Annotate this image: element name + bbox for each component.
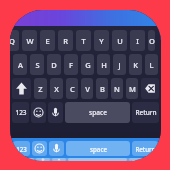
- button[interactable]: 123: [12, 102, 29, 123]
- staticText: I: [136, 36, 139, 46]
- staticText: L: [149, 60, 154, 70]
- button[interactable]: Z: [34, 78, 47, 99]
- button[interactable]: W: [22, 30, 37, 51]
- staticText: 123: [21, 158, 31, 161]
- button[interactable]: M: [126, 78, 138, 99]
- button[interactable]: L: [145, 54, 158, 75]
- button[interactable]: F: [64, 54, 78, 75]
- button[interactable]: 123: [13, 141, 30, 156]
- button[interactable]: U: [112, 30, 127, 51]
- button[interactable]: Return: [132, 102, 159, 123]
- button[interactable]: Q: [10, 10, 161, 161]
- button[interactable]: T: [76, 30, 91, 51]
- button[interactable]: E: [40, 30, 55, 51]
- button[interactable]: O: [148, 30, 155, 51]
- button[interactable]: H: [97, 54, 110, 75]
- staticText: Return: [132, 158, 151, 161]
- button[interactable]: space: [66, 141, 130, 156]
- button[interactable]: space: [65, 102, 130, 123]
- button[interactable]: Emoji keyboard: [32, 141, 47, 156]
- staticText: M: [129, 84, 136, 94]
- button[interactable]: I: [130, 30, 145, 51]
- staticText: D: [51, 60, 57, 70]
- button[interactable]: G: [81, 54, 94, 75]
- button[interactable]: Q: [10, 30, 19, 51]
- staticText: H: [101, 60, 107, 70]
- staticText: G: [85, 60, 91, 70]
- staticText: X: [54, 84, 59, 94]
- staticText: S: [35, 60, 40, 70]
- button[interactable]: space: [68, 158, 127, 161]
- staticText: R: [63, 36, 68, 46]
- staticText: W: [26, 36, 34, 46]
- staticText: B: [100, 84, 105, 94]
- staticText: 123: [16, 145, 27, 153]
- staticText: Return: [135, 108, 157, 117]
- staticText: K: [133, 60, 138, 70]
- staticText: J: [118, 60, 121, 70]
- button[interactable]: D: [47, 54, 61, 75]
- button[interactable]: B: [96, 78, 108, 99]
- button[interactable]: Voice input: [49, 141, 64, 156]
- staticText: Q: [10, 36, 15, 46]
- button[interactable]: Emoji keyboard: [36, 158, 50, 161]
- button[interactable]: V: [81, 78, 93, 99]
- button[interactable]: Return: [129, 158, 153, 161]
- staticText: Z: [38, 84, 43, 94]
- staticText: F: [69, 60, 73, 70]
- staticText: C: [70, 84, 75, 94]
- button[interactable]: Backspace: [141, 78, 159, 99]
- button[interactable]: A: [13, 54, 27, 75]
- staticText: O: [149, 36, 155, 46]
- staticText: V: [85, 84, 90, 94]
- staticText: N: [114, 84, 120, 94]
- staticText: Return: [135, 145, 156, 153]
- button[interactable]: 123: [18, 158, 34, 161]
- button[interactable]: R: [58, 30, 73, 51]
- button[interactable]: C: [66, 78, 78, 99]
- button[interactable]: J: [113, 54, 126, 75]
- button[interactable]: X: [50, 78, 63, 99]
- button[interactable]: K: [129, 54, 142, 75]
- button[interactable]: Voice input: [52, 158, 66, 161]
- staticText: 123: [15, 108, 27, 117]
- staticText: space: [89, 108, 107, 117]
- staticText: U: [117, 36, 123, 46]
- staticText: E: [45, 36, 50, 46]
- button[interactable]: Emoji keyboard: [31, 102, 46, 123]
- staticText: T: [81, 36, 86, 46]
- button[interactable]: Shift: [12, 78, 31, 99]
- button[interactable]: N: [111, 78, 123, 99]
- staticText: A: [18, 60, 23, 70]
- button[interactable]: Voice input: [48, 102, 63, 123]
- staticText: Y: [99, 36, 104, 46]
- button[interactable]: S: [30, 54, 44, 75]
- button[interactable]: Y: [94, 30, 109, 51]
- button[interactable]: Return: [132, 141, 158, 156]
- staticText: space: [90, 145, 107, 153]
